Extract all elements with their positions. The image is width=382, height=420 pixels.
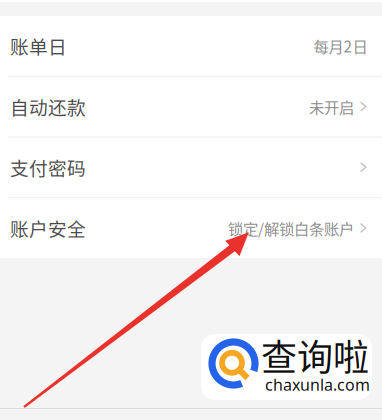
staticText: 自动还款: [10, 93, 86, 120]
staticText: 锁定/解锁白条账户: [228, 217, 354, 239]
staticText: 未开启: [309, 95, 354, 118]
staticText: 账单日: [10, 32, 67, 59]
button[interactable]: 账户安全: [0, 198, 382, 258]
button[interactable]: 账单日: [0, 16, 382, 76]
staticText: 查询啦: [261, 329, 369, 381]
staticText: chaxunla.com: [265, 374, 370, 395]
button[interactable]: 支付密码: [0, 137, 382, 197]
button[interactable]: 自动还款: [0, 77, 382, 137]
staticText: 每月2日: [313, 35, 367, 57]
staticText: 支付密码: [10, 154, 86, 181]
staticText: 账户安全: [10, 215, 86, 242]
